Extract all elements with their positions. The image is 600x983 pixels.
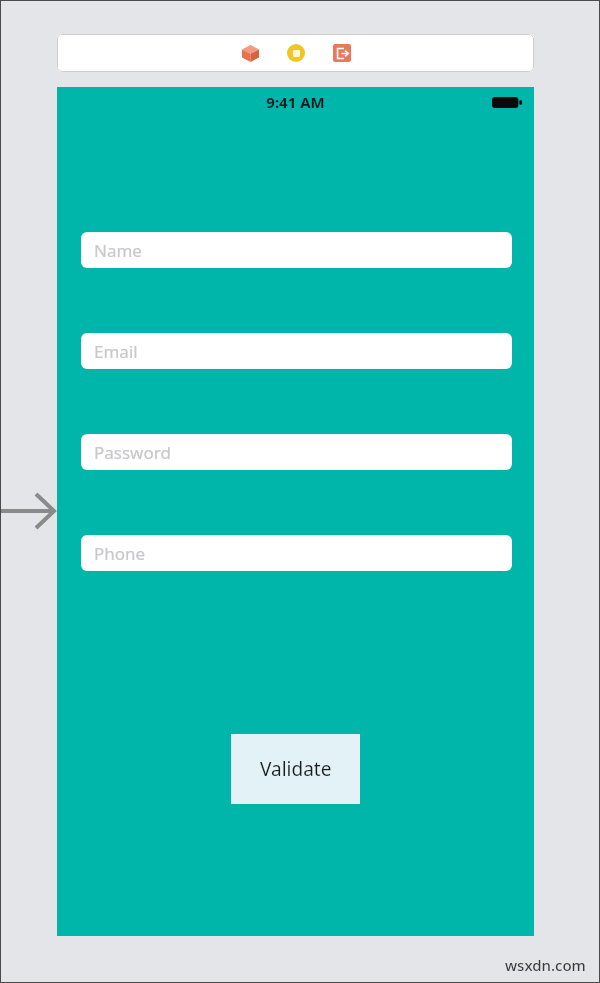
button[interactable]: Password xyxy=(81,434,512,470)
button[interactable]: Build xyxy=(236,39,264,67)
staticText: Email xyxy=(94,340,138,363)
button[interactable]: Export xyxy=(328,39,356,67)
staticText: Validate xyxy=(260,756,332,782)
staticText: wsxdn.com xyxy=(505,955,586,975)
button[interactable]: Validate xyxy=(231,734,360,804)
button[interactable]: Stop xyxy=(282,39,310,67)
staticText: Phone xyxy=(94,542,146,565)
staticText: 9:41 AM xyxy=(266,92,325,112)
button[interactable]: Name xyxy=(81,232,512,268)
staticText: Password xyxy=(94,441,171,464)
button[interactable]: Phone xyxy=(81,535,512,571)
staticText: Name xyxy=(94,239,142,262)
button[interactable]: Email xyxy=(81,333,512,369)
